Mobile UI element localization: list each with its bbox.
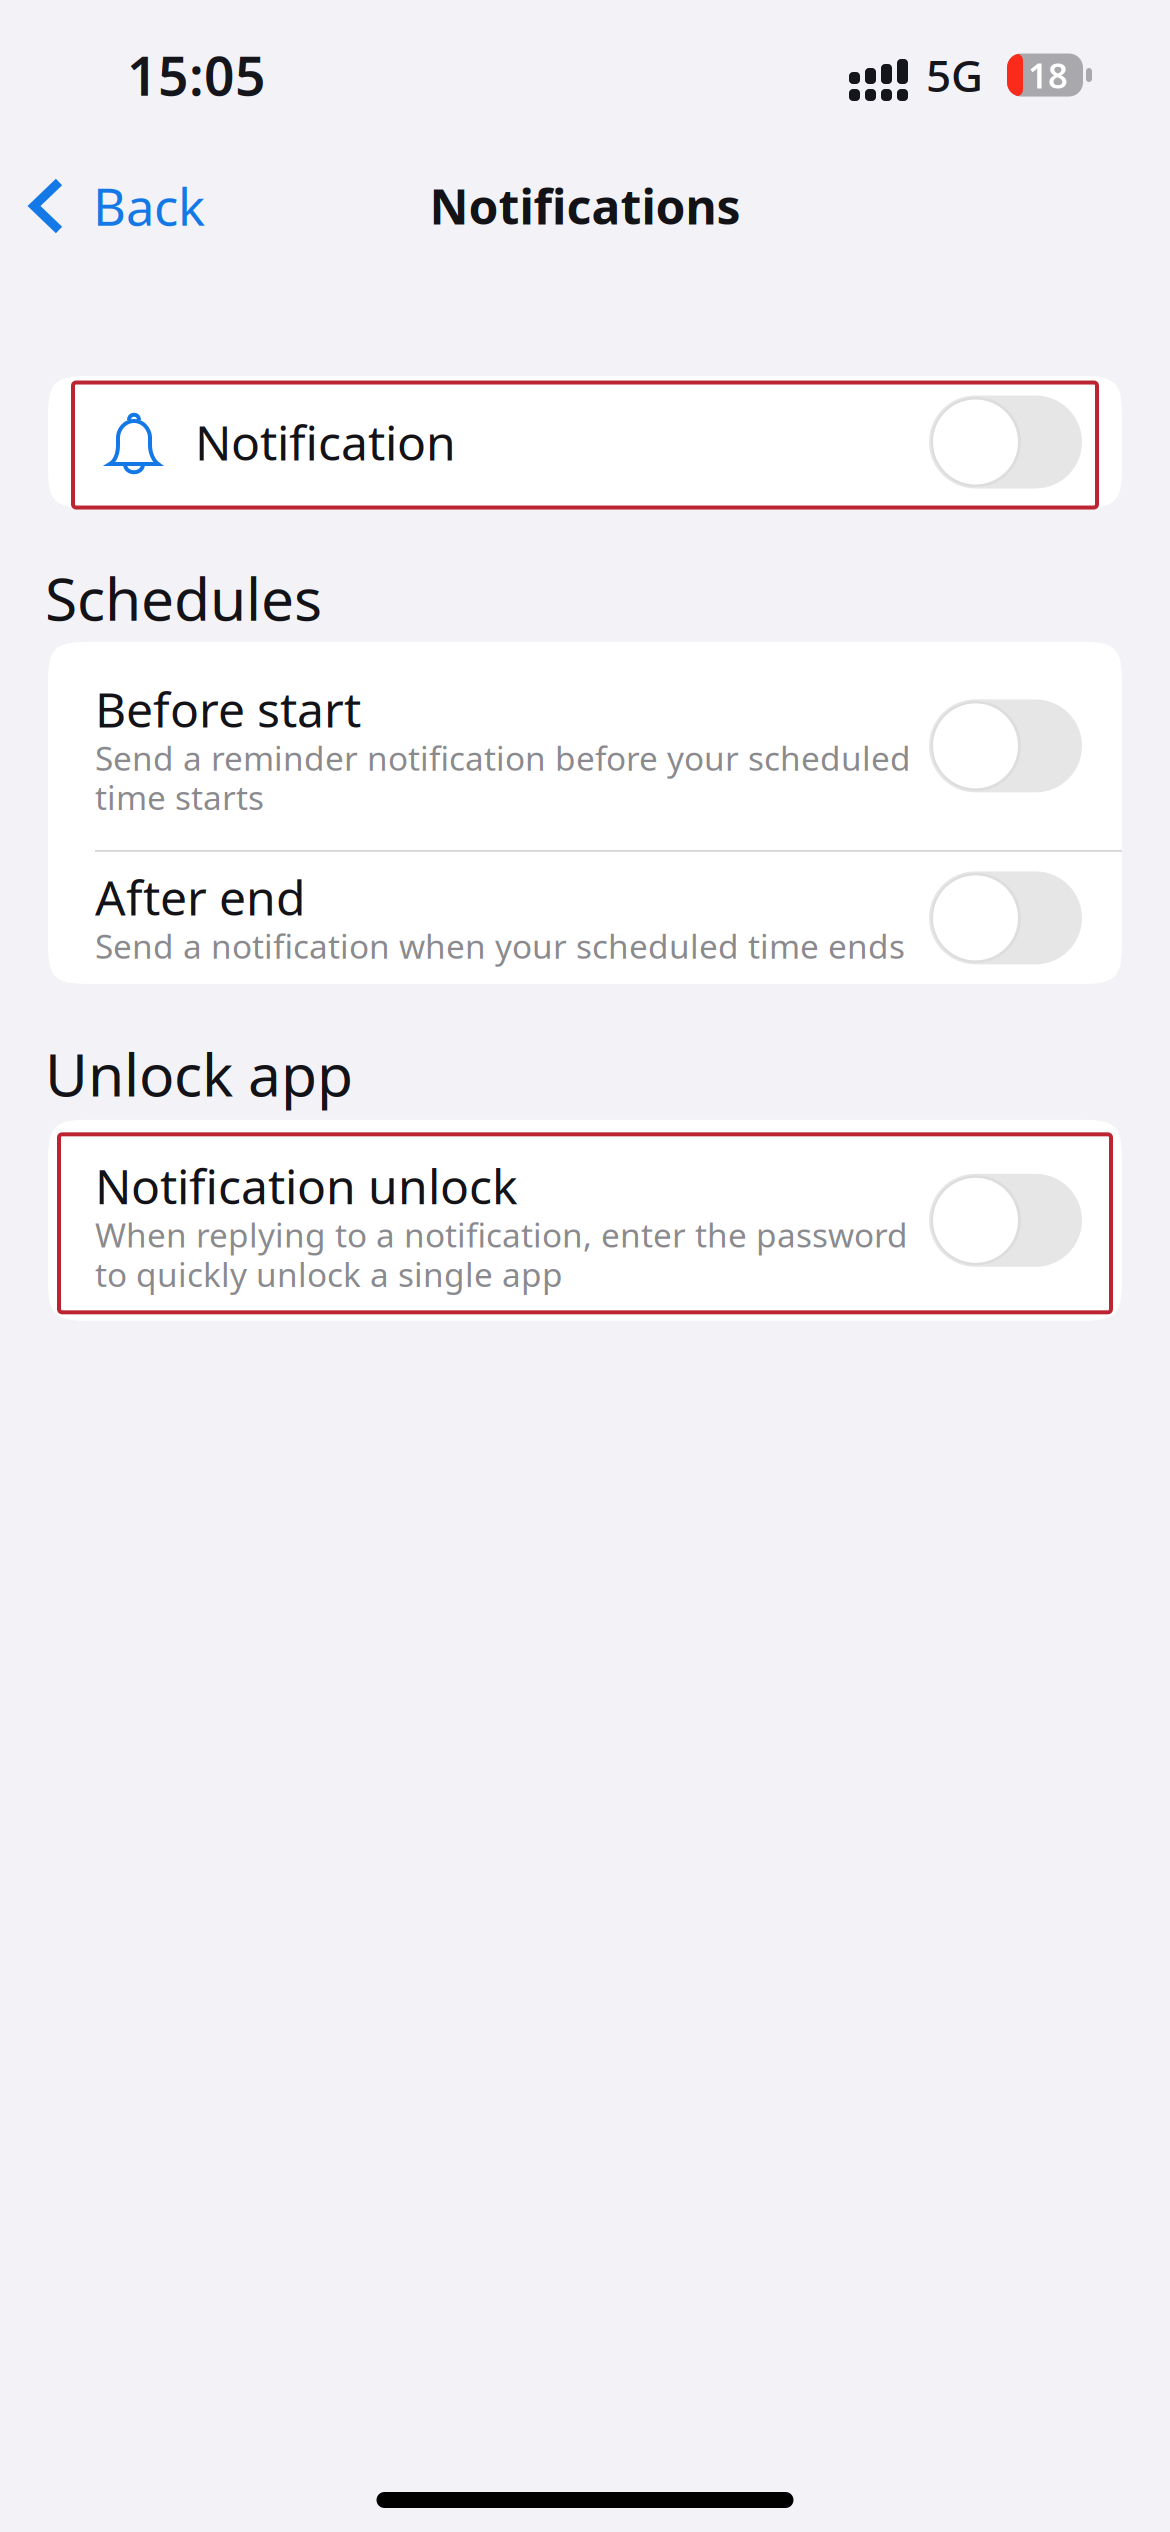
staticText: Unlock app: [45, 1035, 353, 1113]
staticText: Send a notification when your scheduled …: [95, 924, 905, 968]
button[interactable]: Before start: [48, 642, 1122, 850]
button[interactable]: Notification unlock: [48, 1120, 1122, 1321]
staticText: Schedules: [45, 559, 322, 637]
button[interactable]: Notification: [48, 376, 1122, 508]
staticText: Before start: [95, 677, 361, 741]
button[interactable]: After end: [929, 871, 1082, 964]
staticText: Back: [93, 172, 205, 240]
staticText: 18: [1028, 52, 1068, 98]
button[interactable]: Before start: [929, 699, 1082, 792]
button[interactable]: Notification: [929, 395, 1082, 488]
staticText: 5G: [926, 46, 983, 104]
staticText: to quickly unlock a single app: [95, 1252, 563, 1296]
staticText: After end: [95, 865, 306, 929]
staticText: Notification: [195, 410, 456, 474]
staticText: When replying to a notification, enter t…: [95, 1213, 908, 1257]
staticText: Notifications: [429, 174, 740, 238]
staticText: Send a reminder notification before your…: [95, 736, 911, 780]
button[interactable]: Back: [0, 158, 229, 254]
staticText: time starts: [95, 775, 264, 819]
button[interactable]: Notification unlock: [929, 1174, 1082, 1267]
button[interactable]: After end: [48, 852, 1122, 984]
staticText: Notification unlock: [95, 1154, 518, 1217]
staticText: 15:05: [127, 40, 266, 110]
